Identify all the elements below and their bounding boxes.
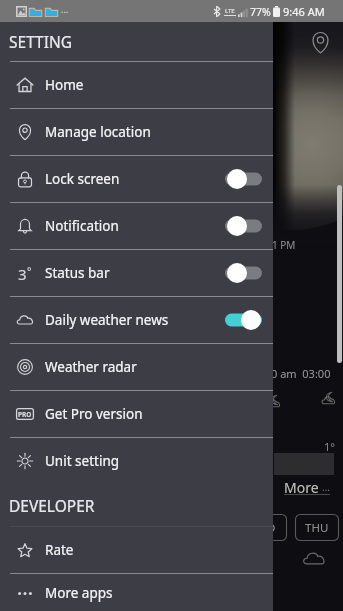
staticText: D xyxy=(267,520,276,536)
staticText: More apps xyxy=(45,584,113,602)
button[interactable]: Switch on xyxy=(225,308,262,332)
button[interactable]: Daily weather news xyxy=(0,297,273,343)
button[interactable]: Rate xyxy=(0,527,273,573)
staticText: 3 xyxy=(18,264,27,282)
staticText: Get Pro version xyxy=(45,405,143,423)
staticText: ... xyxy=(61,3,69,15)
button[interactable]: Lock screen xyxy=(0,156,273,202)
staticText: 9:46 AM xyxy=(283,4,325,19)
staticText: 1° xyxy=(324,439,335,454)
button[interactable]: Home xyxy=(0,62,273,108)
staticText: SETTING xyxy=(9,31,72,52)
staticText: THU xyxy=(305,520,329,536)
button[interactable]: Switch off xyxy=(225,214,262,238)
button[interactable]: PRO xyxy=(0,391,273,437)
staticText: Home xyxy=(45,76,84,94)
staticText: ° xyxy=(27,264,32,278)
button[interactable]: Switch off xyxy=(225,167,262,191)
staticText: Status bar xyxy=(45,264,110,282)
staticText: Unit setting xyxy=(45,452,120,470)
staticText: Notification xyxy=(45,217,119,235)
staticText: Lock screen xyxy=(45,170,120,188)
staticText: Weather radar xyxy=(45,358,137,376)
staticText: 77% xyxy=(250,5,271,19)
staticText: LTE xyxy=(225,7,235,15)
staticText: 0 am 03:00 xyxy=(271,366,331,381)
button[interactable]: Notification xyxy=(0,203,273,249)
staticText: More xyxy=(284,478,319,497)
staticText: DEVELOPER xyxy=(9,495,95,516)
staticText: 1 PM xyxy=(272,238,296,252)
button[interactable]: More apps xyxy=(0,574,273,611)
button[interactable]: Weather radar xyxy=(0,344,273,390)
staticText: Manage location xyxy=(45,123,151,141)
button[interactable]: 3 xyxy=(0,250,273,296)
staticText: Rate xyxy=(45,541,74,559)
staticText: PRO xyxy=(18,410,32,419)
button[interactable]: Switch off xyxy=(225,261,262,285)
staticText: ... xyxy=(322,480,331,494)
staticText: Daily weather news xyxy=(45,311,169,329)
button[interactable]: Unit setting xyxy=(0,438,273,484)
button[interactable]: Manage location xyxy=(0,109,273,155)
